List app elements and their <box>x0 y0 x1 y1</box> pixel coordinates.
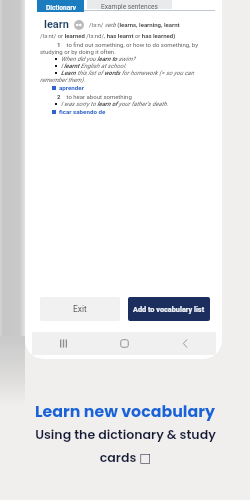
staticText: to find out something, or how to do some… <box>40 41 205 55</box>
button[interactable]: Dictionary <box>37 0 84 10</box>
staticText: Learn this list of words for homework (=… <box>40 69 205 83</box>
staticText: Add to vocabulary list <box>133 305 205 314</box>
staticText: /lɜːnt/ or learned /lɜːnd/, has learnt o… <box>40 32 176 39</box>
staticText: When did you learn to swim? <box>40 55 205 62</box>
staticText: Example sentences <box>101 3 159 11</box>
staticText: to hear about something <box>40 93 205 100</box>
staticText: /lɜːn/ verb (learns, learning, learnt <box>89 21 180 28</box>
staticText: learn <box>44 18 69 31</box>
button[interactable]: Exit <box>40 297 120 321</box>
staticText: 2 <box>57 93 61 100</box>
button[interactable]: Add to vocabulary list <box>128 297 210 321</box>
staticText: aprender <box>59 84 84 91</box>
staticText: Using the dictionary & study cards □ <box>35 426 216 467</box>
staticText: I learnt English at school. <box>40 62 205 69</box>
staticText: Exit <box>73 304 87 314</box>
staticText: Dictionary <box>46 4 76 12</box>
staticText: Learn new vocabulary <box>35 400 215 422</box>
staticText: ficar sabendo de <box>59 108 106 115</box>
staticText: I was sorry to learn of your father's de… <box>40 100 205 107</box>
staticText: 1 <box>57 41 61 48</box>
button[interactable]: Home <box>94 332 155 355</box>
button[interactable]: Back <box>155 332 216 355</box>
button[interactable]: Example sentences <box>87 0 172 9</box>
button[interactable]: Recent apps <box>32 332 94 355</box>
